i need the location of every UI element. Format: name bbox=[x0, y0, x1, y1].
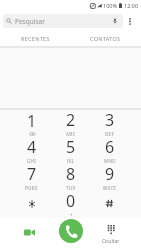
button[interactable]: Call bbox=[59, 219, 83, 243]
button[interactable]: 4 bbox=[12, 137, 51, 164]
staticText: CONTATOS bbox=[90, 35, 121, 42]
staticText: WXYZ bbox=[103, 185, 117, 190]
staticText: Pesquisar bbox=[15, 17, 45, 26]
button[interactable]: 1 bbox=[12, 110, 51, 137]
staticText: 2 bbox=[66, 109, 76, 131]
staticText: 3 bbox=[105, 109, 115, 131]
staticText: 100% bbox=[103, 2, 118, 9]
staticText: 5 bbox=[66, 136, 76, 158]
button[interactable]: Pesquisar bbox=[3, 14, 123, 28]
staticText: 9 bbox=[105, 163, 115, 185]
button[interactable]: RECENTES bbox=[0, 31, 70, 46]
button[interactable]: CONTATOS bbox=[70, 31, 141, 46]
button[interactable] bbox=[90, 191, 129, 218]
staticText: 7 bbox=[27, 163, 37, 185]
staticText: 0 bbox=[66, 190, 76, 212]
staticText: JKL bbox=[67, 158, 75, 163]
staticText: PQRS bbox=[25, 185, 38, 190]
button[interactable]: Ocultar bbox=[97, 224, 125, 245]
staticText: RECENTES bbox=[21, 35, 50, 42]
staticText: DEF bbox=[105, 131, 115, 136]
button[interactable]: 0 bbox=[51, 191, 90, 218]
staticText: Ocultar bbox=[102, 238, 120, 245]
staticText: MNO bbox=[104, 158, 116, 163]
button[interactable] bbox=[12, 191, 51, 218]
button[interactable]: 2 bbox=[51, 110, 90, 137]
staticText: 8 bbox=[66, 163, 76, 185]
staticText: 4 bbox=[27, 136, 37, 158]
staticText: 1 bbox=[27, 110, 37, 132]
staticText: 12:00 bbox=[124, 2, 139, 9]
button[interactable]: 9 bbox=[90, 164, 129, 191]
button[interactable]: 6 bbox=[90, 137, 129, 164]
button[interactable]: Video call bbox=[18, 221, 40, 243]
button[interactable]: 5 bbox=[51, 137, 90, 164]
staticText: ABC bbox=[66, 131, 76, 136]
button[interactable]: 3 bbox=[90, 110, 129, 137]
staticText: 6 bbox=[105, 136, 115, 158]
button[interactable]: 8 bbox=[51, 164, 90, 191]
other: Voice search bbox=[112, 18, 118, 24]
staticText: GHI bbox=[27, 158, 37, 163]
button[interactable]: More options bbox=[123, 14, 137, 28]
staticText: TUV bbox=[66, 185, 76, 190]
staticText: + bbox=[70, 212, 73, 217]
button[interactable]: 7 bbox=[12, 164, 51, 191]
